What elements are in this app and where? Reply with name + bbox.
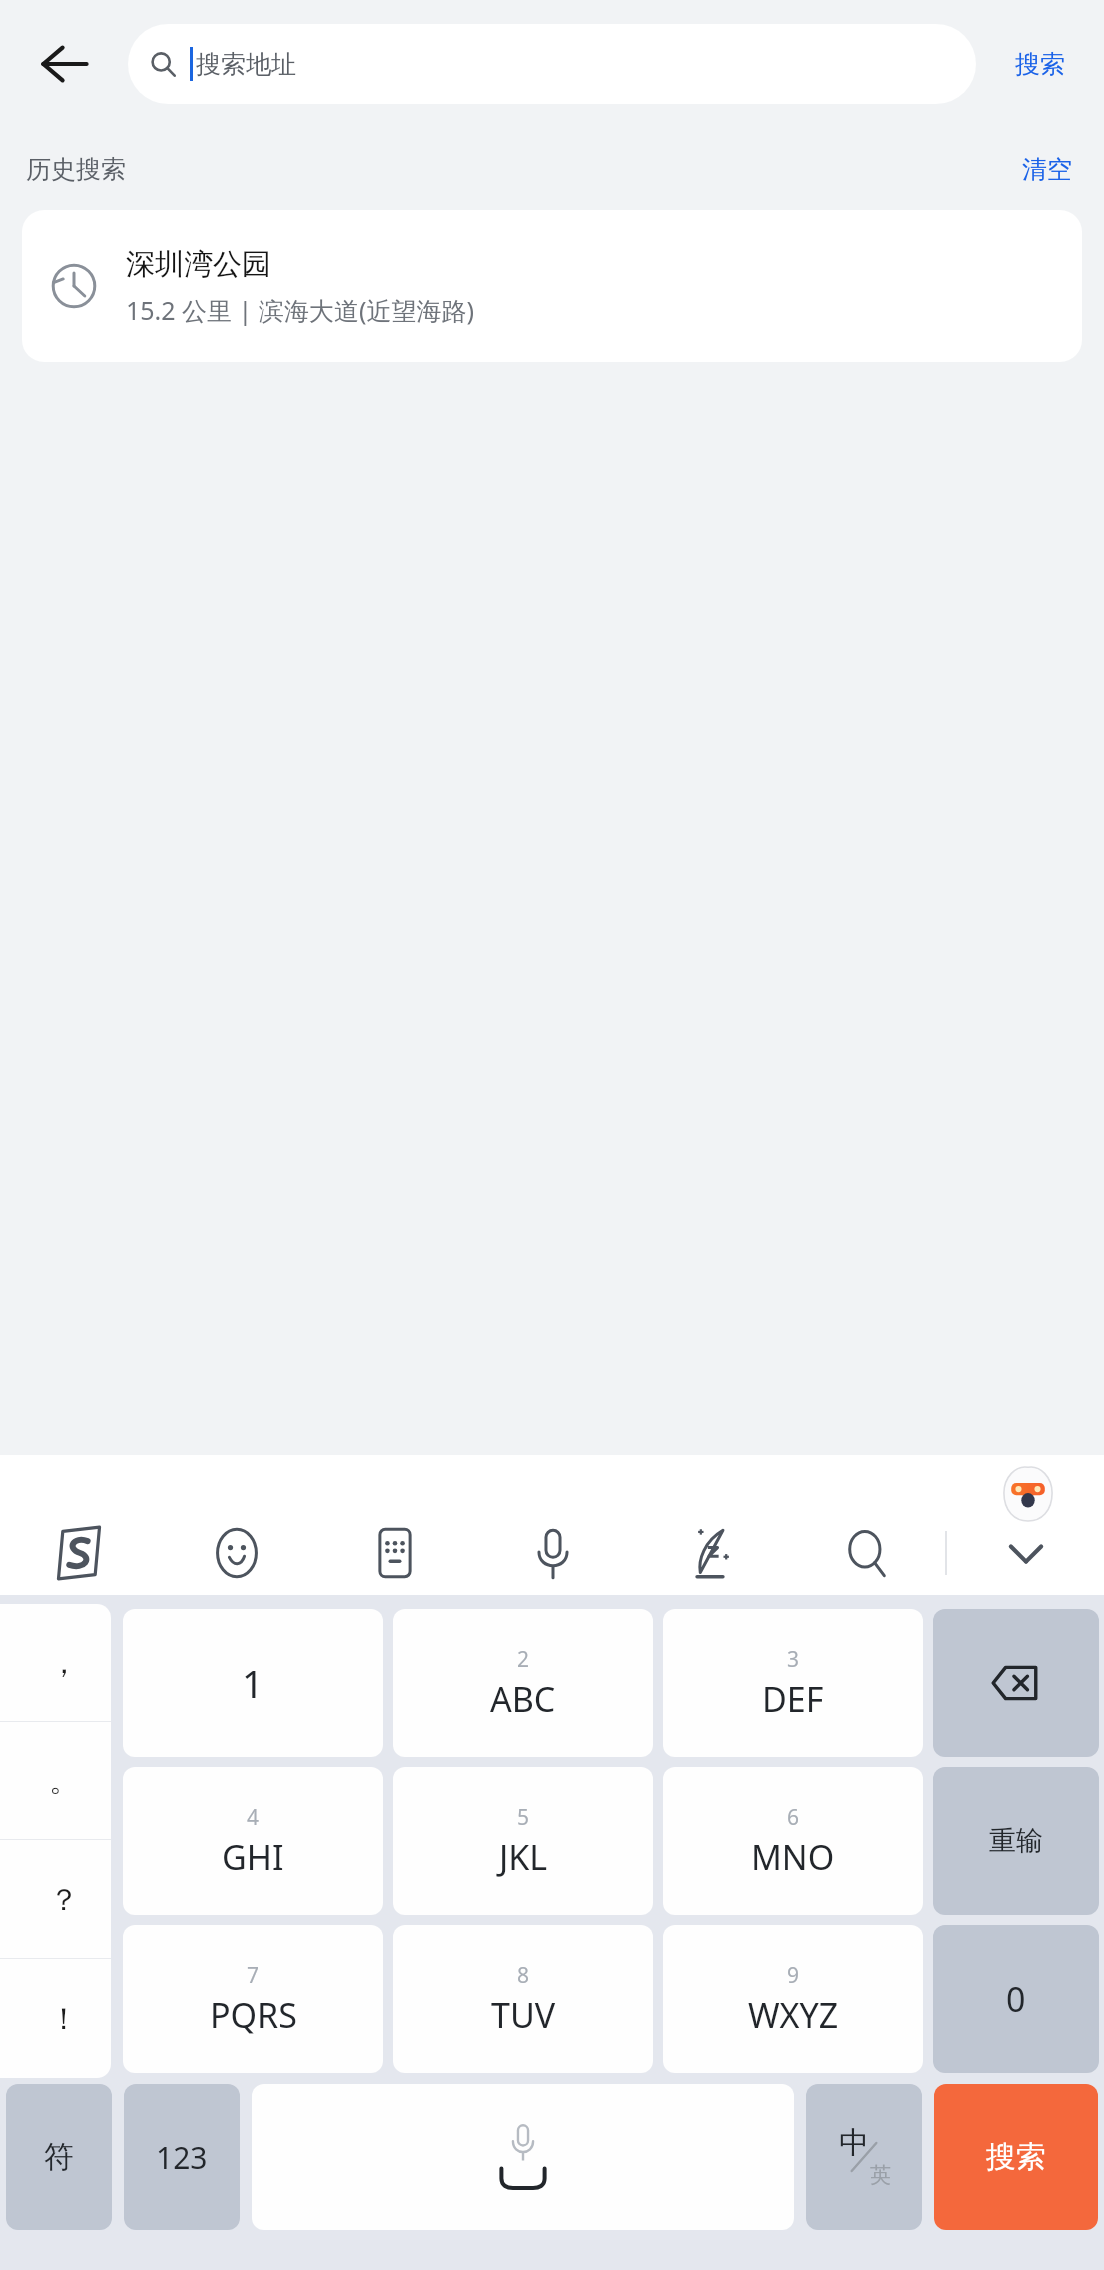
staticText: MNO	[751, 1834, 835, 1880]
staticText: 7	[247, 1961, 260, 1990]
button[interactable]: Voice input	[474, 1511, 631, 1595]
staticText: 8	[517, 1961, 530, 1990]
staticText: GHI	[222, 1834, 284, 1880]
staticText: 9	[787, 1961, 800, 1990]
staticText: 历史搜索	[26, 154, 126, 185]
staticText: 15.2 公里 | 滨海大道(近望海路)	[126, 293, 474, 327]
button[interactable]: 7	[123, 1925, 383, 2073]
staticText: WXYZ	[748, 1992, 839, 2038]
button[interactable]: Sogou	[0, 1511, 158, 1595]
staticText: 搜索	[986, 2138, 1046, 2176]
button[interactable]: Search	[788, 1511, 945, 1595]
staticText: 。	[49, 1762, 79, 1800]
button[interactable]: Switch Chinese English	[806, 2084, 922, 2230]
staticText: 5	[517, 1803, 530, 1832]
staticText: ？	[49, 1881, 79, 1919]
button[interactable]: Backspace	[933, 1609, 1099, 1757]
button[interactable]: Assistant	[1000, 1465, 1056, 1521]
staticText: 搜索地址	[196, 49, 296, 80]
button[interactable]: ，	[0, 1604, 111, 1722]
staticText: ！	[49, 2000, 79, 2038]
staticText: ，	[49, 1644, 79, 1682]
button[interactable]: ！	[0, 1959, 111, 2078]
button[interactable]: 清空	[1016, 148, 1078, 191]
staticText: 英	[870, 2162, 891, 2188]
button[interactable]: 重输	[933, 1767, 1099, 1915]
button[interactable]: Handwriting	[631, 1511, 788, 1595]
button[interactable]: Emoji	[158, 1511, 316, 1595]
staticText: 6	[787, 1803, 800, 1832]
staticText: 符	[44, 2138, 74, 2176]
button[interactable]: 6	[663, 1767, 923, 1915]
staticText: 2	[517, 1645, 530, 1674]
staticText: 0	[1006, 1976, 1026, 2022]
staticText: TUV	[491, 1992, 556, 2038]
button[interactable]: 。	[0, 1722, 111, 1840]
button[interactable]: Back	[0, 0, 128, 128]
button[interactable]: 1	[123, 1609, 383, 1757]
button[interactable]: 符	[6, 2084, 112, 2230]
staticText: 1	[242, 1657, 264, 1709]
button[interactable]: 搜索	[934, 2084, 1098, 2230]
staticText: 重输	[989, 1824, 1043, 1858]
staticText: ABC	[490, 1676, 556, 1722]
staticText: 4	[247, 1803, 260, 1832]
staticText: 搜索	[1015, 49, 1065, 80]
staticText: 深圳湾公园	[126, 246, 271, 283]
staticText: PQRS	[210, 1992, 297, 2038]
button[interactable]: 8	[393, 1925, 653, 2073]
button[interactable]: 搜索	[976, 0, 1104, 128]
button[interactable]: 5	[393, 1767, 653, 1915]
staticText: JKL	[499, 1834, 548, 1880]
button[interactable]: ？	[0, 1840, 111, 1959]
button[interactable]: 9	[663, 1925, 923, 2073]
button[interactable]: Space	[252, 2084, 794, 2230]
button[interactable]: 3	[663, 1609, 923, 1757]
button[interactable]: Keyboard layout	[316, 1511, 474, 1595]
staticText: 中	[839, 2124, 869, 2162]
button[interactable]: 0	[933, 1925, 1099, 2073]
button[interactable]: 4	[123, 1767, 383, 1915]
staticText: 3	[787, 1645, 800, 1674]
staticText: 123	[156, 2137, 208, 2178]
button[interactable]: 123	[124, 2084, 240, 2230]
button[interactable]: 深圳湾公园	[22, 210, 1082, 362]
button[interactable]: Hide keyboard	[947, 1511, 1104, 1595]
button[interactable]: 2	[393, 1609, 653, 1757]
button[interactable]: 搜索地址	[128, 24, 976, 104]
staticText: 清空	[1022, 154, 1072, 185]
staticText: DEF	[762, 1676, 824, 1722]
